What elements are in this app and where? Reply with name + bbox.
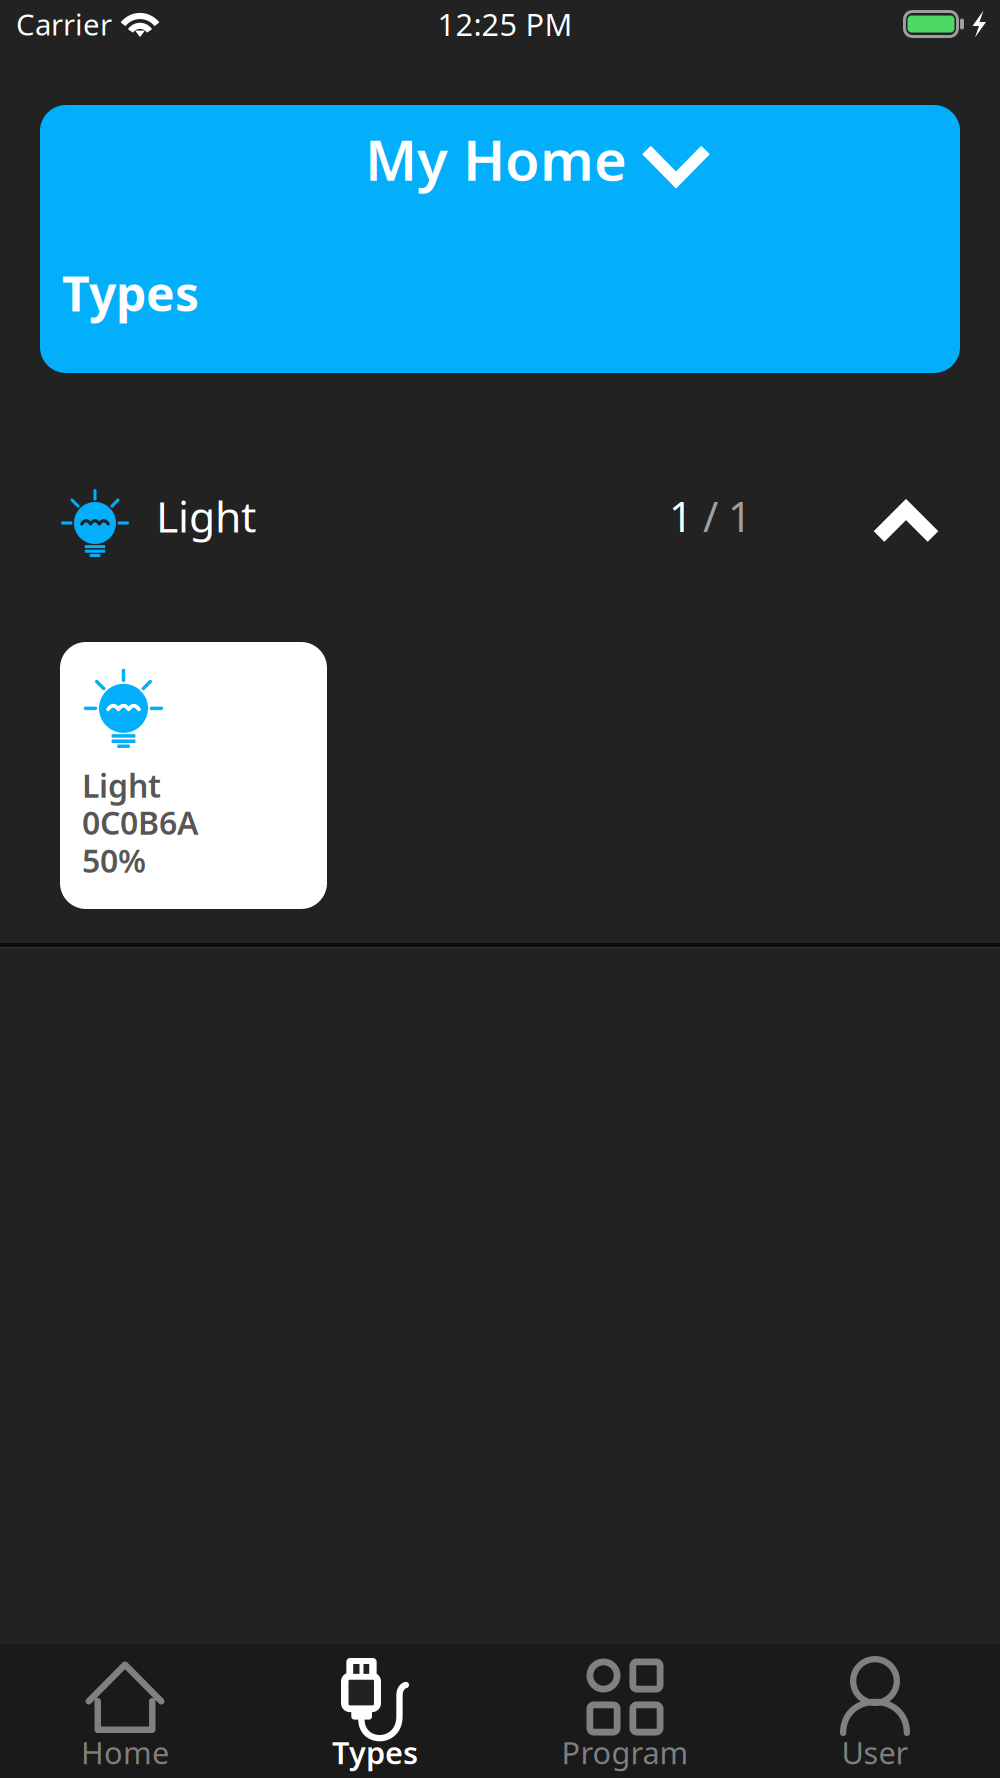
staticText: 1 <box>669 489 693 543</box>
staticText: Program <box>561 1732 688 1773</box>
button[interactable]: Types <box>250 1644 500 1778</box>
button[interactable]: My Home <box>40 105 960 197</box>
button[interactable]: User <box>750 1644 1000 1778</box>
staticText: User <box>841 1732 908 1773</box>
button[interactable]: Collapse Light group <box>851 471 961 571</box>
staticText: Home <box>81 1732 169 1773</box>
staticText: Types <box>62 261 199 325</box>
button[interactable]: Home <box>0 1644 250 1778</box>
staticText: Light <box>156 488 256 544</box>
staticText: Light <box>82 764 161 806</box>
staticText: 0C0B6A <box>82 801 199 843</box>
button[interactable]: Light <box>60 642 327 909</box>
staticText: 50% <box>82 839 146 881</box>
staticText: Types <box>332 1732 418 1773</box>
button[interactable]: Program <box>500 1644 750 1778</box>
staticText: Carrier <box>16 4 112 43</box>
staticText: My Home <box>365 122 627 196</box>
staticText: / <box>703 489 718 543</box>
button[interactable]: Light <box>0 471 1000 571</box>
staticText: 12:25 PM <box>437 4 572 44</box>
staticText: 1 <box>728 489 752 543</box>
